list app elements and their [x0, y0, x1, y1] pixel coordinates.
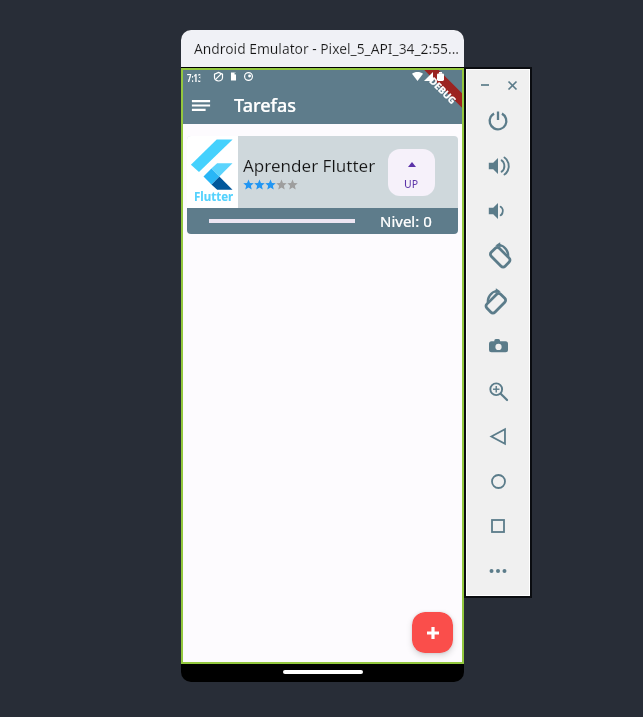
staticText: DEBUG	[427, 74, 459, 107]
button[interactable]: Zoom	[481, 374, 515, 408]
button[interactable]: Home	[481, 464, 515, 498]
button[interactable]: Flutter	[187, 136, 458, 234]
staticText: Android Emulator - Pixel_5_API_34_2:55..…	[194, 39, 460, 58]
button[interactable]: Add task	[412, 612, 453, 653]
button[interactable]: Volume down	[481, 194, 515, 228]
staticText: Tarefas	[234, 93, 297, 118]
button[interactable]: Open navigation menu	[183, 86, 219, 124]
button[interactable]: More	[481, 554, 515, 588]
button[interactable]: Level up	[388, 149, 435, 196]
button[interactable]: Volume up	[481, 149, 515, 183]
button[interactable]: Minimize	[474, 74, 496, 96]
button[interactable]: Rotate right	[481, 284, 515, 318]
staticText: 7:13	[187, 70, 200, 83]
staticText: Flutter	[194, 189, 234, 205]
button[interactable]: Power	[481, 104, 515, 138]
button[interactable]: Rotate left	[481, 238, 515, 272]
staticText: UP	[404, 177, 419, 191]
staticText: Aprender Flutter	[243, 154, 376, 177]
button[interactable]: Take screenshot	[481, 329, 515, 363]
button[interactable]: Overview	[481, 509, 515, 543]
staticText: Nivel: 0	[380, 211, 432, 231]
button[interactable]: Close	[501, 74, 523, 96]
button[interactable]: Back	[481, 419, 515, 453]
